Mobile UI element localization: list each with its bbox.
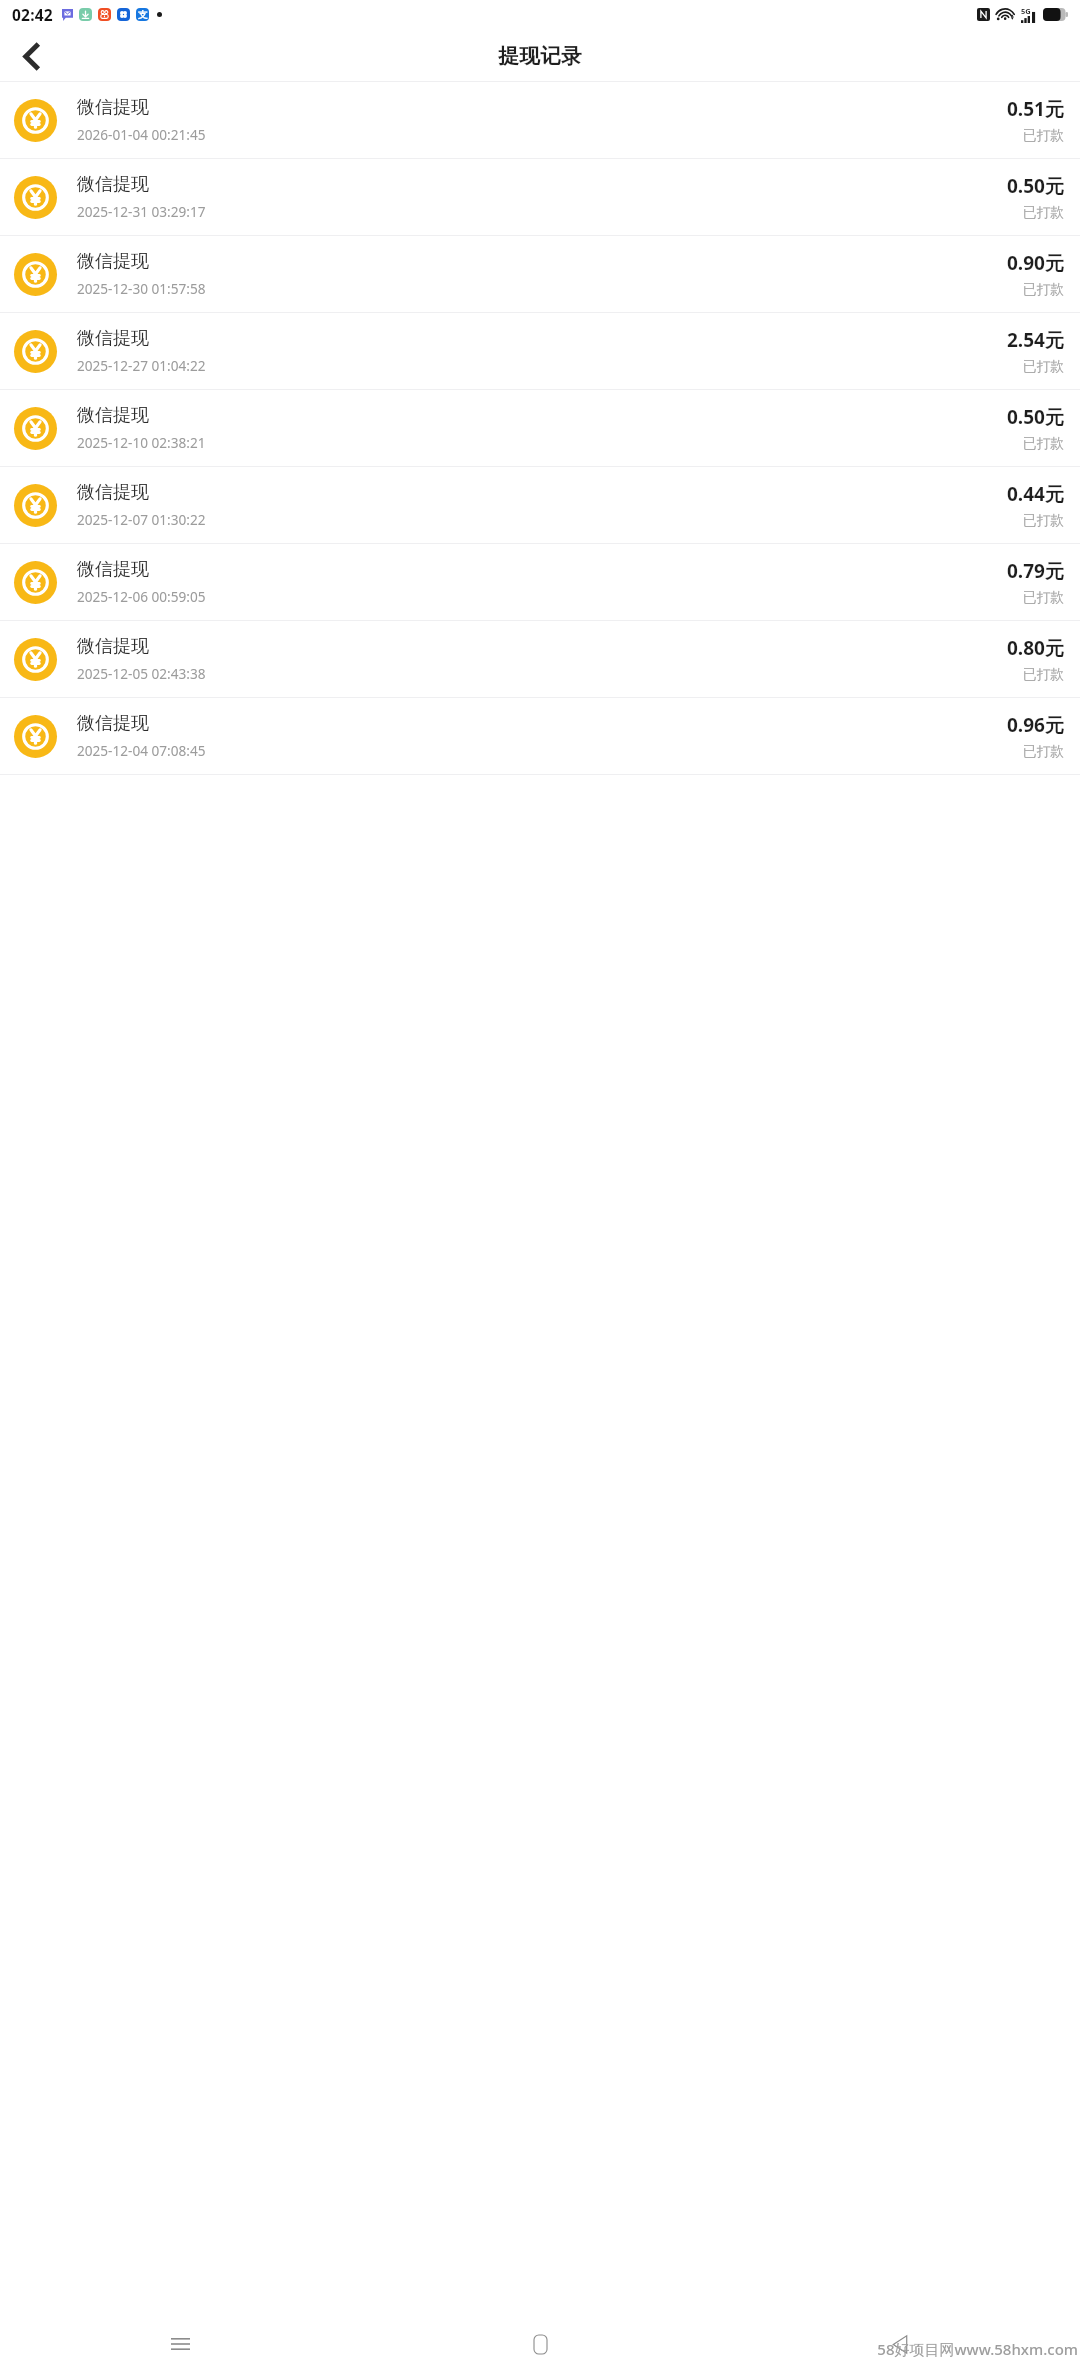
staticText: 58好项目网www.58hxm.com (877, 2339, 1078, 2359)
staticText: 微信提现 (77, 712, 149, 735)
staticText: 微信提现 (77, 327, 149, 350)
staticText: 已打款 (1023, 435, 1064, 452)
button[interactable]: 微信提现 (0, 390, 1080, 466)
staticText: 已打款 (1023, 204, 1064, 221)
button[interactable]: 微信提现 (0, 544, 1080, 620)
button[interactable]: 微信提现 (0, 313, 1080, 389)
staticText: 2025-12-30 01:57:58 (77, 279, 206, 298)
staticText: 2025-12-07 01:30:22 (77, 510, 206, 529)
staticText: 已打款 (1023, 127, 1064, 144)
button[interactable]: 微信提现 (0, 698, 1080, 774)
button[interactable]: 微信提现 (0, 621, 1080, 697)
staticText: 0.96元 (1007, 712, 1064, 738)
staticText: 微信提现 (77, 96, 149, 119)
staticText: 已打款 (1023, 512, 1064, 529)
staticText: 5G (1021, 6, 1031, 16)
staticText: 微信提现 (77, 558, 149, 581)
staticText: 微信提现 (77, 635, 149, 658)
staticText: 0.79元 (1007, 558, 1064, 584)
button[interactable]: 微信提现 (0, 159, 1080, 235)
staticText: 2025-12-06 00:59:05 (77, 587, 206, 606)
staticText: 2025-12-05 02:43:38 (77, 664, 206, 683)
button[interactable]: 微信提现 (0, 467, 1080, 543)
staticText: 已打款 (1023, 589, 1064, 606)
staticText: 2025-12-04 07:08:45 (77, 741, 206, 760)
staticText: 2025-12-27 01:04:22 (77, 356, 206, 375)
button[interactable]: Back (8, 33, 54, 79)
staticText: 0.90元 (1007, 250, 1064, 276)
button[interactable]: 微信提现 (0, 82, 1080, 158)
staticText: 0.44元 (1007, 481, 1064, 507)
staticText: 2026-01-04 00:21:45 (77, 125, 206, 144)
staticText: 2.54元 (1007, 327, 1064, 353)
staticText: 微信提现 (77, 481, 149, 504)
staticText: 提现记录 (498, 43, 582, 69)
staticText: 0.50元 (1007, 173, 1064, 199)
staticText: 已打款 (1023, 743, 1064, 760)
staticText: 微信提现 (77, 173, 149, 196)
button[interactable]: 微信提现 (0, 236, 1080, 312)
staticText: 支 (138, 9, 148, 21)
staticText: 2025-12-10 02:38:21 (77, 433, 206, 452)
button[interactable]: Back (720, 2326, 1080, 2362)
staticText: 微信提现 (77, 404, 149, 427)
staticText: 02:42 (12, 4, 53, 25)
staticText: 0.50元 (1007, 404, 1064, 430)
button[interactable]: Recents (0, 2326, 360, 2362)
staticText: 微信提现 (77, 250, 149, 273)
staticText: 0.51元 (1007, 96, 1064, 122)
staticText: 2025-12-31 03:29:17 (77, 202, 206, 221)
staticText: 已打款 (1023, 281, 1064, 298)
staticText: 0.80元 (1007, 635, 1064, 661)
staticText: 已打款 (1023, 666, 1064, 683)
staticText: 已打款 (1023, 358, 1064, 375)
button[interactable]: Home (360, 2326, 720, 2362)
